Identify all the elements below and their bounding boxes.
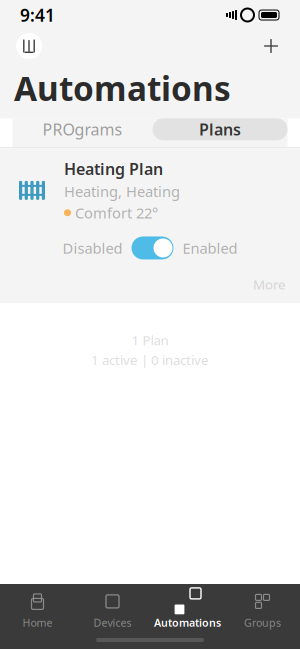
staticText: Heating Plan <box>64 158 163 179</box>
staticText: More <box>253 275 286 293</box>
staticText: 1 Plan <box>131 331 168 349</box>
staticText: 9:41 <box>20 3 55 26</box>
button[interactable]: Plans <box>152 118 287 140</box>
staticText: Enabled <box>182 238 237 258</box>
staticText: Home <box>22 615 52 630</box>
staticText: Automations <box>14 66 231 110</box>
button[interactable]: PROgrams <box>12 118 152 140</box>
button[interactable]: Automations <box>150 592 225 630</box>
button[interactable]: Enabled toggle <box>131 236 173 259</box>
staticText: 1 active | 0 inactive <box>91 351 209 369</box>
staticText: Devices <box>93 615 131 630</box>
staticText: Heating, Heating <box>64 181 180 201</box>
button[interactable]: More <box>253 271 300 297</box>
staticText: PROgrams <box>42 119 122 140</box>
button[interactable]: Home <box>0 592 75 630</box>
staticText: Groups <box>244 615 281 630</box>
staticText: Plans <box>199 119 241 140</box>
staticText: Comfort 22° <box>75 203 158 222</box>
staticText: Disabled <box>62 238 122 258</box>
button[interactable]: Groups <box>225 592 300 630</box>
button[interactable]: Add <box>254 31 288 61</box>
staticText: Automations <box>154 615 221 630</box>
button[interactable]: Location <box>12 31 46 61</box>
button[interactable]: Devices <box>75 592 150 630</box>
